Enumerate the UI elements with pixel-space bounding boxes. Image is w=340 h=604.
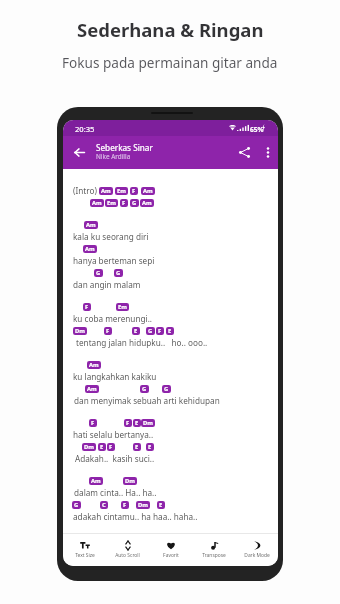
staticText: hanya berteman sepi — [73, 255, 155, 266]
button[interactable]: Dark Mode — [235, 534, 278, 566]
staticText: Em — [118, 303, 127, 311]
staticText: 20:35 — [75, 124, 95, 134]
staticText: F — [158, 327, 162, 335]
staticText: F — [122, 199, 126, 207]
staticText: Dm — [125, 477, 135, 485]
staticText: Am — [92, 199, 102, 207]
staticText: Dm — [143, 419, 153, 427]
staticText: Dm — [75, 327, 85, 335]
staticText: G — [116, 269, 121, 277]
button[interactable]: Text Size — [63, 534, 106, 566]
staticText: tentang jalan hidupku.. ho.. ooo.. — [76, 337, 208, 348]
button[interactable]: Favorit — [149, 534, 192, 566]
staticText: Sederhana & Ringan — [77, 17, 264, 42]
staticText: kala ku seorang diri — [73, 231, 149, 242]
staticText: ku coba merenungi.. — [73, 313, 153, 324]
staticText: F — [132, 187, 136, 195]
staticText: Dm — [84, 443, 94, 451]
staticText: G — [74, 501, 79, 509]
staticText: Am — [91, 477, 101, 485]
staticText: Favorit — [163, 552, 179, 559]
staticText: dan angin malam — [73, 279, 141, 290]
staticText: G — [132, 199, 137, 207]
staticText: 65% — [250, 125, 264, 134]
staticText: F — [91, 419, 95, 427]
staticText: F — [123, 501, 127, 509]
button[interactable]: Back — [69, 142, 89, 162]
staticText: C — [102, 501, 106, 509]
staticText: Am — [89, 361, 99, 369]
staticText: Dm — [138, 501, 148, 509]
staticText: G — [148, 327, 153, 335]
staticText: G — [96, 269, 101, 277]
staticText: G — [142, 385, 147, 393]
staticText: E — [100, 443, 104, 451]
staticText: F — [126, 419, 130, 427]
staticText: Am — [86, 221, 96, 229]
staticText: Am — [101, 187, 111, 195]
staticText: Seberkas Sinar — [96, 142, 153, 153]
staticText: Adakah.. kasih suci.. — [75, 453, 155, 464]
staticText: Em — [107, 199, 116, 207]
staticText: Nike Ardilla — [96, 152, 131, 161]
staticText: Am — [87, 385, 97, 393]
button[interactable]: Transpose — [192, 534, 235, 566]
staticText: F — [109, 443, 113, 451]
staticText: E — [159, 501, 163, 509]
staticText: Am — [143, 187, 153, 195]
staticText: dan menyimak sebuah arti kehidupan — [74, 395, 220, 406]
staticText: Dark Mode — [244, 552, 270, 559]
staticText: Auto Scroll — [115, 552, 140, 559]
staticText: Am — [142, 199, 152, 207]
button[interactable]: More options — [257, 142, 278, 163]
staticText: F — [85, 303, 89, 311]
staticText: (Intro) — [73, 185, 97, 196]
staticText: Transpose — [202, 552, 226, 559]
staticText: dalam cinta.. Ha.. ha.. — [74, 487, 157, 498]
staticText: Fokus pada permainan gitar anda — [62, 53, 278, 72]
staticText: hati selalu bertanya.. — [73, 429, 154, 440]
staticText: E — [148, 443, 152, 451]
staticText: adakah cintamu.. ha haa.. haha.. — [73, 511, 198, 522]
staticText: G — [164, 385, 169, 393]
staticText: Text Size — [75, 552, 95, 559]
staticText: E — [134, 327, 138, 335]
staticText: E — [135, 419, 139, 427]
staticText: Em — [117, 187, 126, 195]
button[interactable]: Share — [234, 142, 255, 163]
staticText: E — [168, 327, 172, 335]
staticText: E — [135, 443, 139, 451]
staticText: F — [106, 327, 110, 335]
staticText: ku langkahkan kakiku — [73, 371, 157, 382]
staticText: Am — [85, 245, 95, 253]
button[interactable]: Auto Scroll — [106, 534, 149, 566]
